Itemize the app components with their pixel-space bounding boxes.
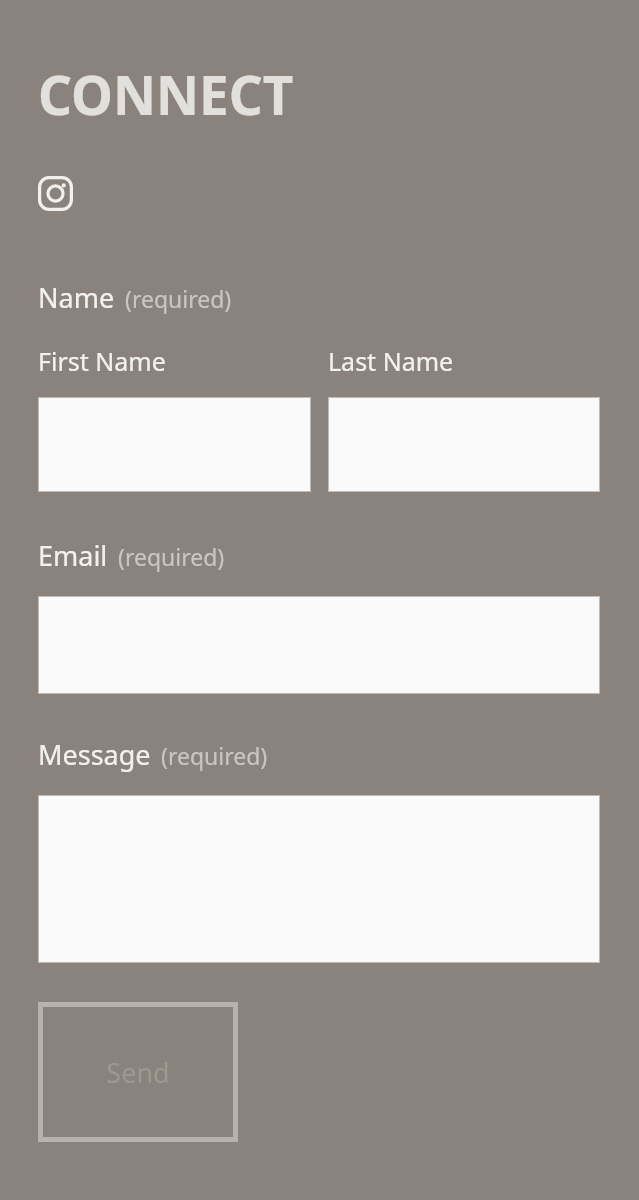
staticText: Message [38, 736, 151, 773]
button[interactable]: Instagram [38, 176, 73, 211]
staticText: Send [106, 1054, 170, 1091]
staticText: Last Name [328, 344, 454, 378]
button[interactable]: Email input [38, 596, 600, 694]
staticText: (required) [118, 541, 225, 572]
staticText: First Name [38, 344, 328, 378]
staticText: (required) [161, 740, 268, 771]
button[interactable]: Last Name input [328, 397, 600, 492]
staticText: Name [38, 279, 115, 316]
staticText: Email [38, 537, 108, 574]
staticText: (required) [125, 283, 232, 314]
button[interactable]: First Name input [38, 397, 311, 492]
button[interactable]: Send [38, 1002, 238, 1142]
button[interactable]: Message input [38, 795, 600, 963]
staticText: CONNECT [38, 58, 294, 130]
